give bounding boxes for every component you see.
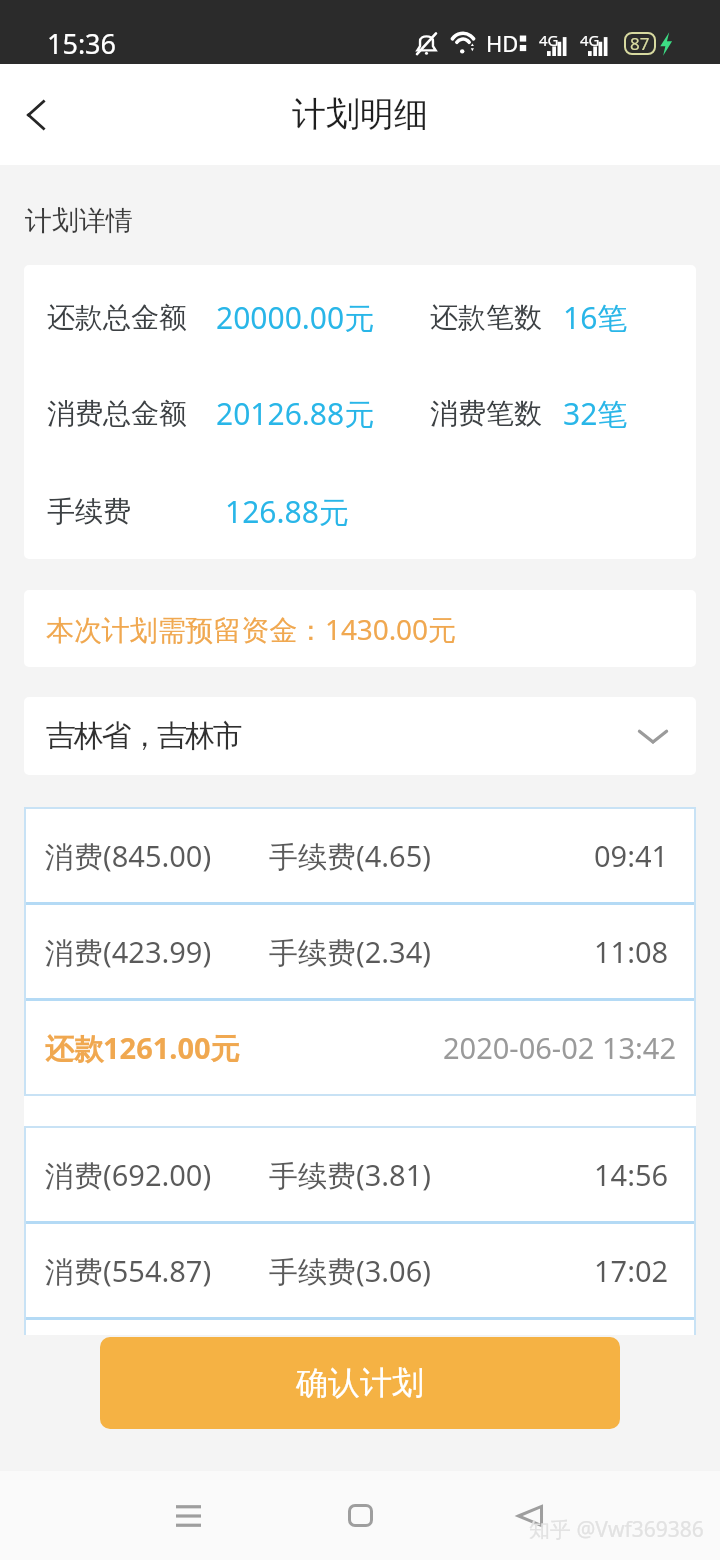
staticText: 手续费(2.34) — [269, 932, 431, 972]
staticText: 15:36 — [47, 25, 117, 62]
button[interactable]: 确认计划 — [100, 1337, 620, 1429]
staticText: 知乎 @Vwf369386 — [529, 1515, 704, 1544]
button[interactable]: Recent apps — [140, 1471, 236, 1560]
button[interactable]: Back — [482, 1471, 578, 1560]
staticText: 126.88元 — [225, 491, 349, 532]
staticText: 还款总金额 — [47, 300, 187, 335]
staticText: 4G — [539, 30, 559, 50]
staticText: 14:56 — [594, 1155, 669, 1194]
button[interactable]: 消费(692.00) — [24, 1128, 696, 1221]
staticText: HD — [486, 28, 519, 58]
button[interactable]: Home — [312, 1471, 408, 1560]
staticText: 手续费(3.06) — [269, 1251, 431, 1291]
staticText: 20126.88元 — [216, 393, 375, 434]
button[interactable]: 消费(423.99) — [24, 905, 696, 998]
staticText: 还款1261.00元 — [45, 1028, 240, 1068]
staticText: 消费(554.87) — [45, 1251, 212, 1291]
button[interactable]: 吉林省，吉林市 — [24, 697, 696, 775]
button[interactable]: 消费(554.87) — [24, 1224, 696, 1317]
staticText: 消费(845.00) — [45, 836, 212, 876]
staticText: 17:02 — [594, 1251, 669, 1290]
staticText: 本次计划需预留资金：1430.00元 — [46, 610, 456, 648]
staticText: 消费笔数 — [430, 396, 542, 431]
staticText: 计划详情 — [25, 204, 133, 238]
staticText: 手续费 — [47, 494, 131, 529]
staticText: 87 — [630, 32, 650, 55]
staticText: 2020-06-02 13:42 — [443, 1028, 677, 1067]
staticText: 32笔 — [563, 393, 628, 434]
button[interactable]: 还款1261.00元 — [24, 1001, 696, 1094]
staticText: 11:08 — [594, 932, 669, 971]
staticText: 消费总金额 — [47, 396, 187, 431]
staticText: 4G — [580, 30, 600, 50]
staticText: 消费(692.00) — [45, 1155, 212, 1195]
staticText: 确认计划 — [296, 1363, 424, 1403]
staticText: 手续费(3.81) — [269, 1155, 431, 1195]
staticText: 手续费(4.65) — [269, 836, 431, 876]
staticText: 还款笔数 — [430, 300, 542, 335]
button[interactable]: Back — [0, 64, 72, 165]
staticText: 计划明细 — [292, 93, 428, 136]
staticText: 吉林省，吉林市 — [46, 717, 241, 755]
button[interactable]: 消费(845.00) — [24, 809, 696, 902]
staticText: 09:41 — [594, 836, 669, 875]
other: Expand — [636, 719, 670, 753]
staticText: 20000.00元 — [216, 297, 375, 338]
staticText: 16笔 — [563, 297, 628, 338]
staticText: 消费(423.99) — [45, 932, 212, 972]
